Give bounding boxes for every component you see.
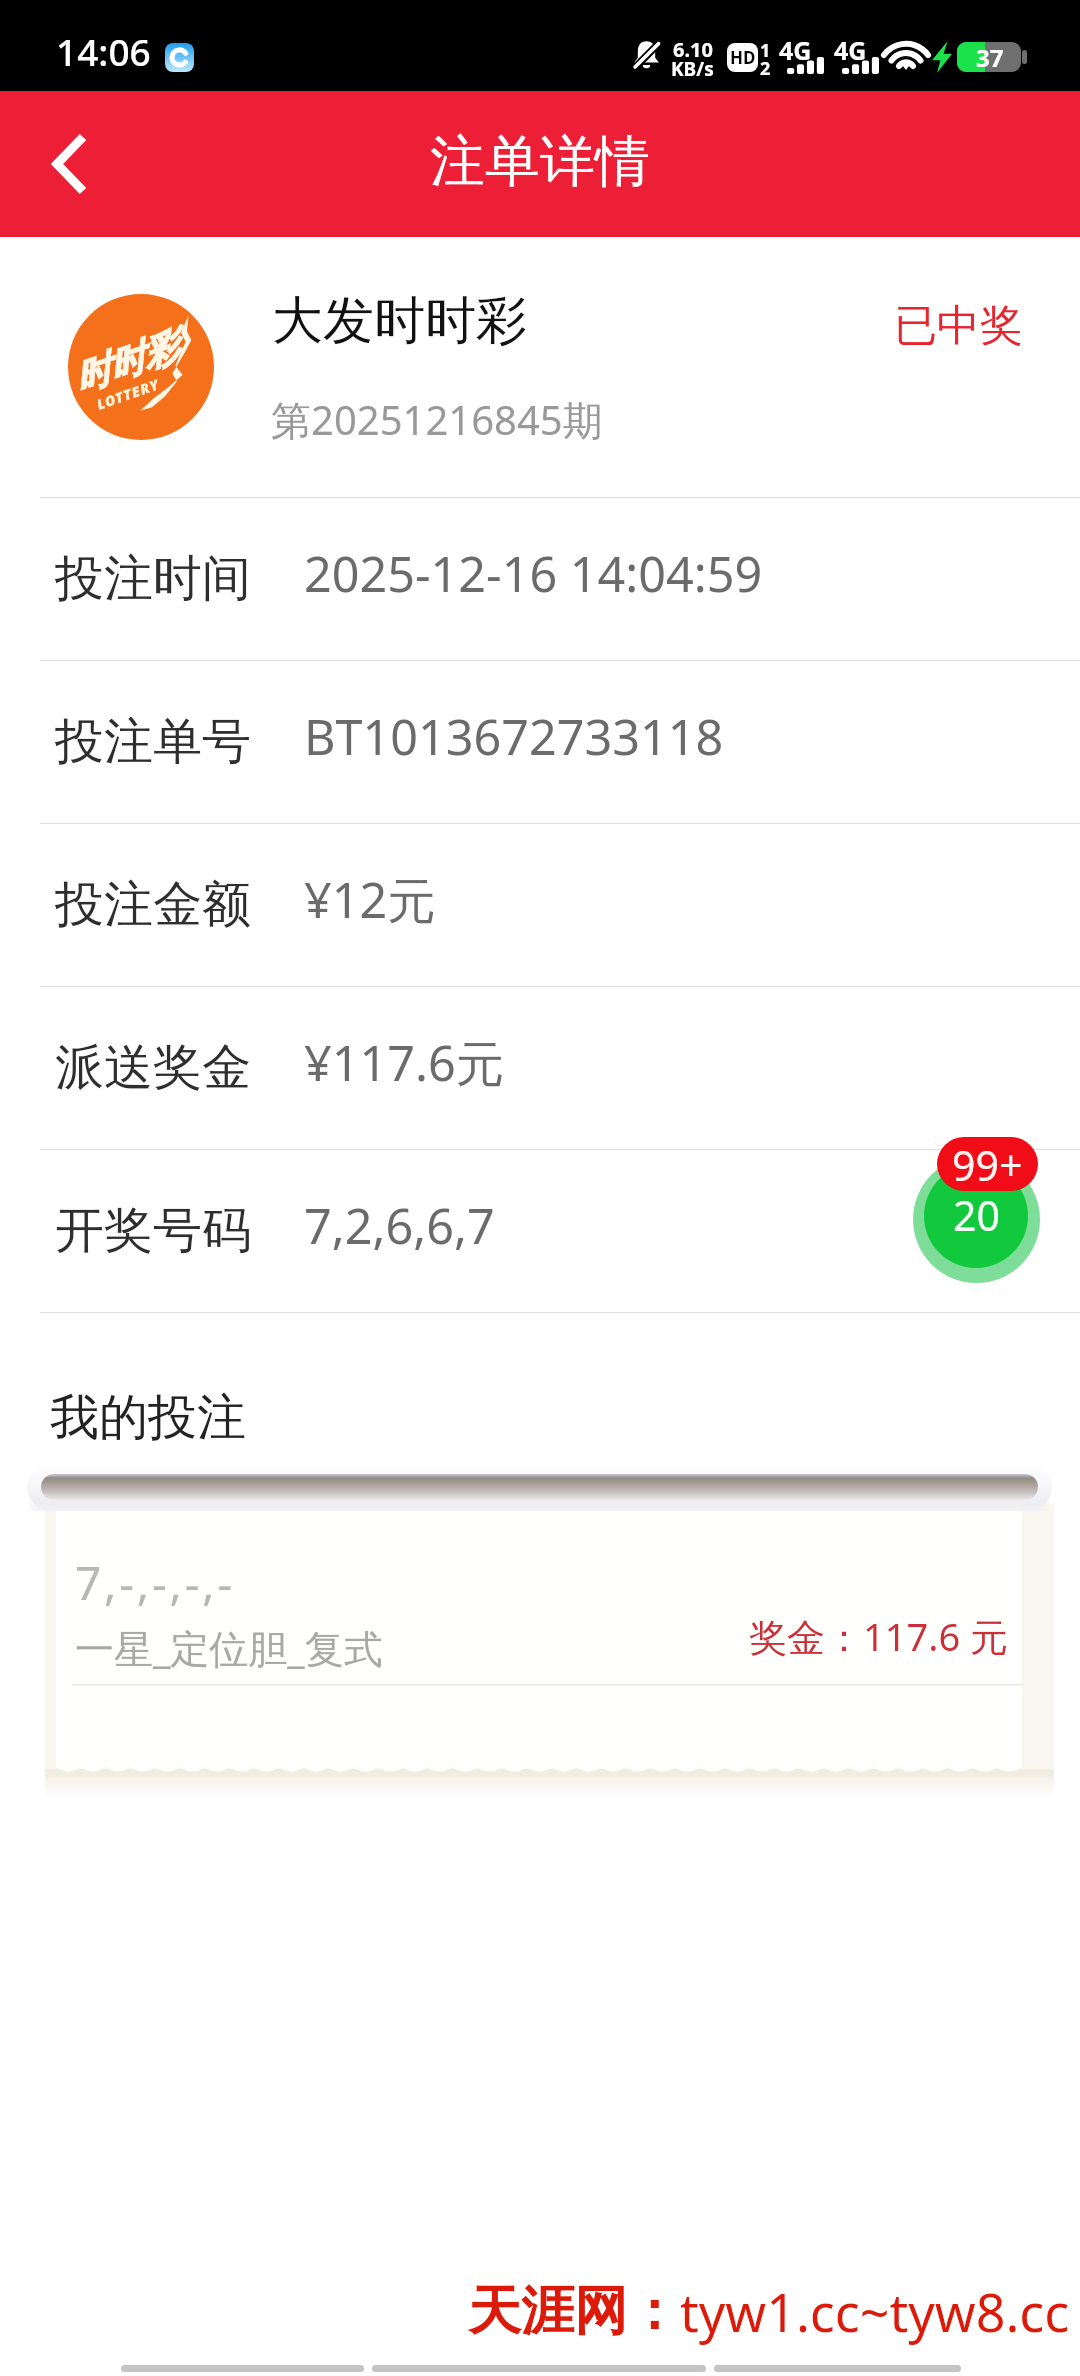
- button[interactable]: [56, 1500, 1022, 1767]
- staticText: 开奖号码: [55, 1200, 251, 1262]
- staticText: 投注金额: [55, 874, 251, 936]
- staticText: 2: [760, 56, 771, 81]
- button[interactable]: 投注金额: [0, 824, 1080, 986]
- staticText: 大发时时彩: [272, 289, 527, 353]
- staticText: 时时彩: [68, 323, 184, 401]
- staticText: KB/s: [671, 56, 714, 82]
- staticText: 2025-12-16 14:04:59: [304, 540, 763, 606]
- staticText: tyw1.cc~tyw8.cc: [680, 2276, 1070, 2347]
- button[interactable]: Back: [0, 91, 140, 237]
- staticText: ¥117.6元: [304, 1029, 505, 1095]
- staticText: 投注单号: [55, 711, 251, 773]
- staticText: 已中奖: [894, 299, 1023, 353]
- staticText: 注单详情: [430, 127, 650, 196]
- staticText: 第20251216845期: [271, 392, 603, 447]
- button[interactable]: 投注时间: [0, 498, 1080, 660]
- staticText: 14:06: [56, 26, 151, 76]
- button[interactable]: 开奖号码: [0, 1150, 1080, 1312]
- staticText: LOTTERY: [94, 374, 163, 414]
- staticText: 我的投注: [50, 1387, 246, 1449]
- button[interactable]: Unread messages: [924, 1164, 1028, 1268]
- staticText: 99+: [952, 1137, 1023, 1191]
- staticText: 7,2,6,6,7: [304, 1192, 495, 1258]
- button[interactable]: 时时彩: [0, 237, 1080, 497]
- staticText: 1: [760, 38, 771, 63]
- staticText: 天涯网：: [468, 2278, 680, 2345]
- staticText: BT1013672733118: [304, 703, 724, 769]
- staticText: 7,-,-,-,-: [75, 1551, 236, 1614]
- staticText: 6.10: [673, 36, 713, 63]
- staticText: HD: [730, 46, 756, 69]
- staticText: 20: [953, 1187, 1000, 1243]
- button[interactable]: 派送奖金: [0, 987, 1080, 1149]
- staticText: 4G: [779, 33, 812, 67]
- staticText: ¥12元: [304, 866, 436, 932]
- staticText: 4G: [834, 33, 867, 67]
- staticText: 一星_定位胆_复式: [75, 1621, 383, 1674]
- button[interactable]: 投注单号: [0, 661, 1080, 823]
- staticText: 奖金：117.6 元: [749, 1610, 1009, 1662]
- staticText: 37: [976, 42, 1004, 71]
- staticText: 投注时间: [55, 548, 251, 610]
- button[interactable]: 99 plus notifications: [937, 1137, 1038, 1191]
- staticText: 派送奖金: [55, 1037, 251, 1099]
